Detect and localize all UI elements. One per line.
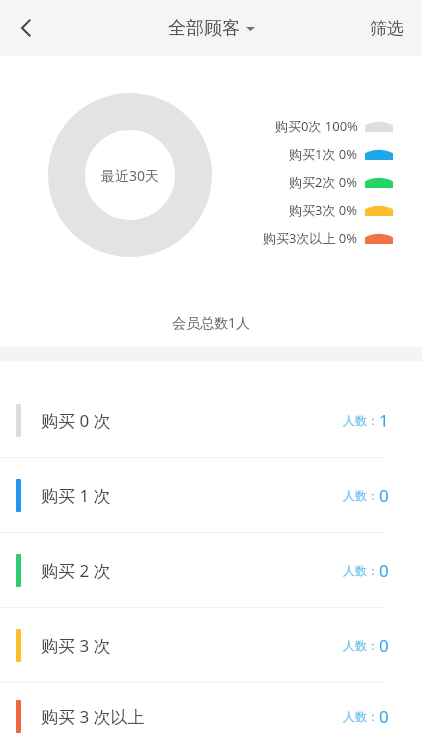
- staticText: 1: [379, 409, 389, 432]
- button[interactable]: Back: [0, 2, 52, 54]
- button[interactable]: 购买3次 0%: [289, 196, 393, 224]
- button[interactable]: 购买 3 次以上: [0, 683, 422, 750]
- button[interactable]: 购买 2 次: [0, 533, 422, 607]
- staticText: 0: [379, 484, 389, 507]
- staticText: 购买 3 次: [41, 634, 111, 657]
- button[interactable]: 筛选: [352, 0, 422, 56]
- staticText: 购买0次 100%: [275, 117, 358, 135]
- button[interactable]: 全部顾客: [168, 17, 255, 40]
- button[interactable]: 购买0次 100%: [275, 112, 393, 140]
- staticText: 购买2次 0%: [289, 173, 358, 191]
- staticText: 购买1次 0%: [289, 145, 358, 163]
- staticText: 购买3次 0%: [289, 201, 358, 219]
- staticText: 人数：: [343, 638, 379, 653]
- staticText: 人数：: [343, 488, 379, 503]
- staticText: 会员总数1人: [0, 313, 422, 332]
- staticText: 购买3次以上 0%: [263, 229, 358, 247]
- button[interactable]: 购买3次以上 0%: [263, 224, 393, 252]
- staticText: 人数：: [343, 413, 379, 428]
- staticText: 全部顾客: [168, 17, 240, 40]
- button[interactable]: 购买 0 次: [0, 383, 422, 457]
- staticText: 人数：: [343, 709, 379, 724]
- staticText: 人数：: [343, 563, 379, 578]
- staticText: 购买 3 次以上: [41, 705, 145, 728]
- staticText: 购买 2 次: [41, 559, 111, 582]
- staticText: 0: [379, 559, 389, 582]
- button[interactable]: 购买 1 次: [0, 458, 422, 532]
- staticText: 购买 1 次: [41, 484, 111, 507]
- staticText: 购买 0 次: [41, 409, 111, 432]
- button[interactable]: 购买2次 0%: [289, 168, 393, 196]
- staticText: 0: [379, 634, 389, 657]
- button[interactable]: 购买 3 次: [0, 608, 422, 682]
- staticText: 最近30天: [101, 166, 160, 185]
- staticText: 0: [379, 705, 389, 728]
- staticText: 筛选: [370, 18, 404, 39]
- button[interactable]: 购买1次 0%: [289, 140, 393, 168]
